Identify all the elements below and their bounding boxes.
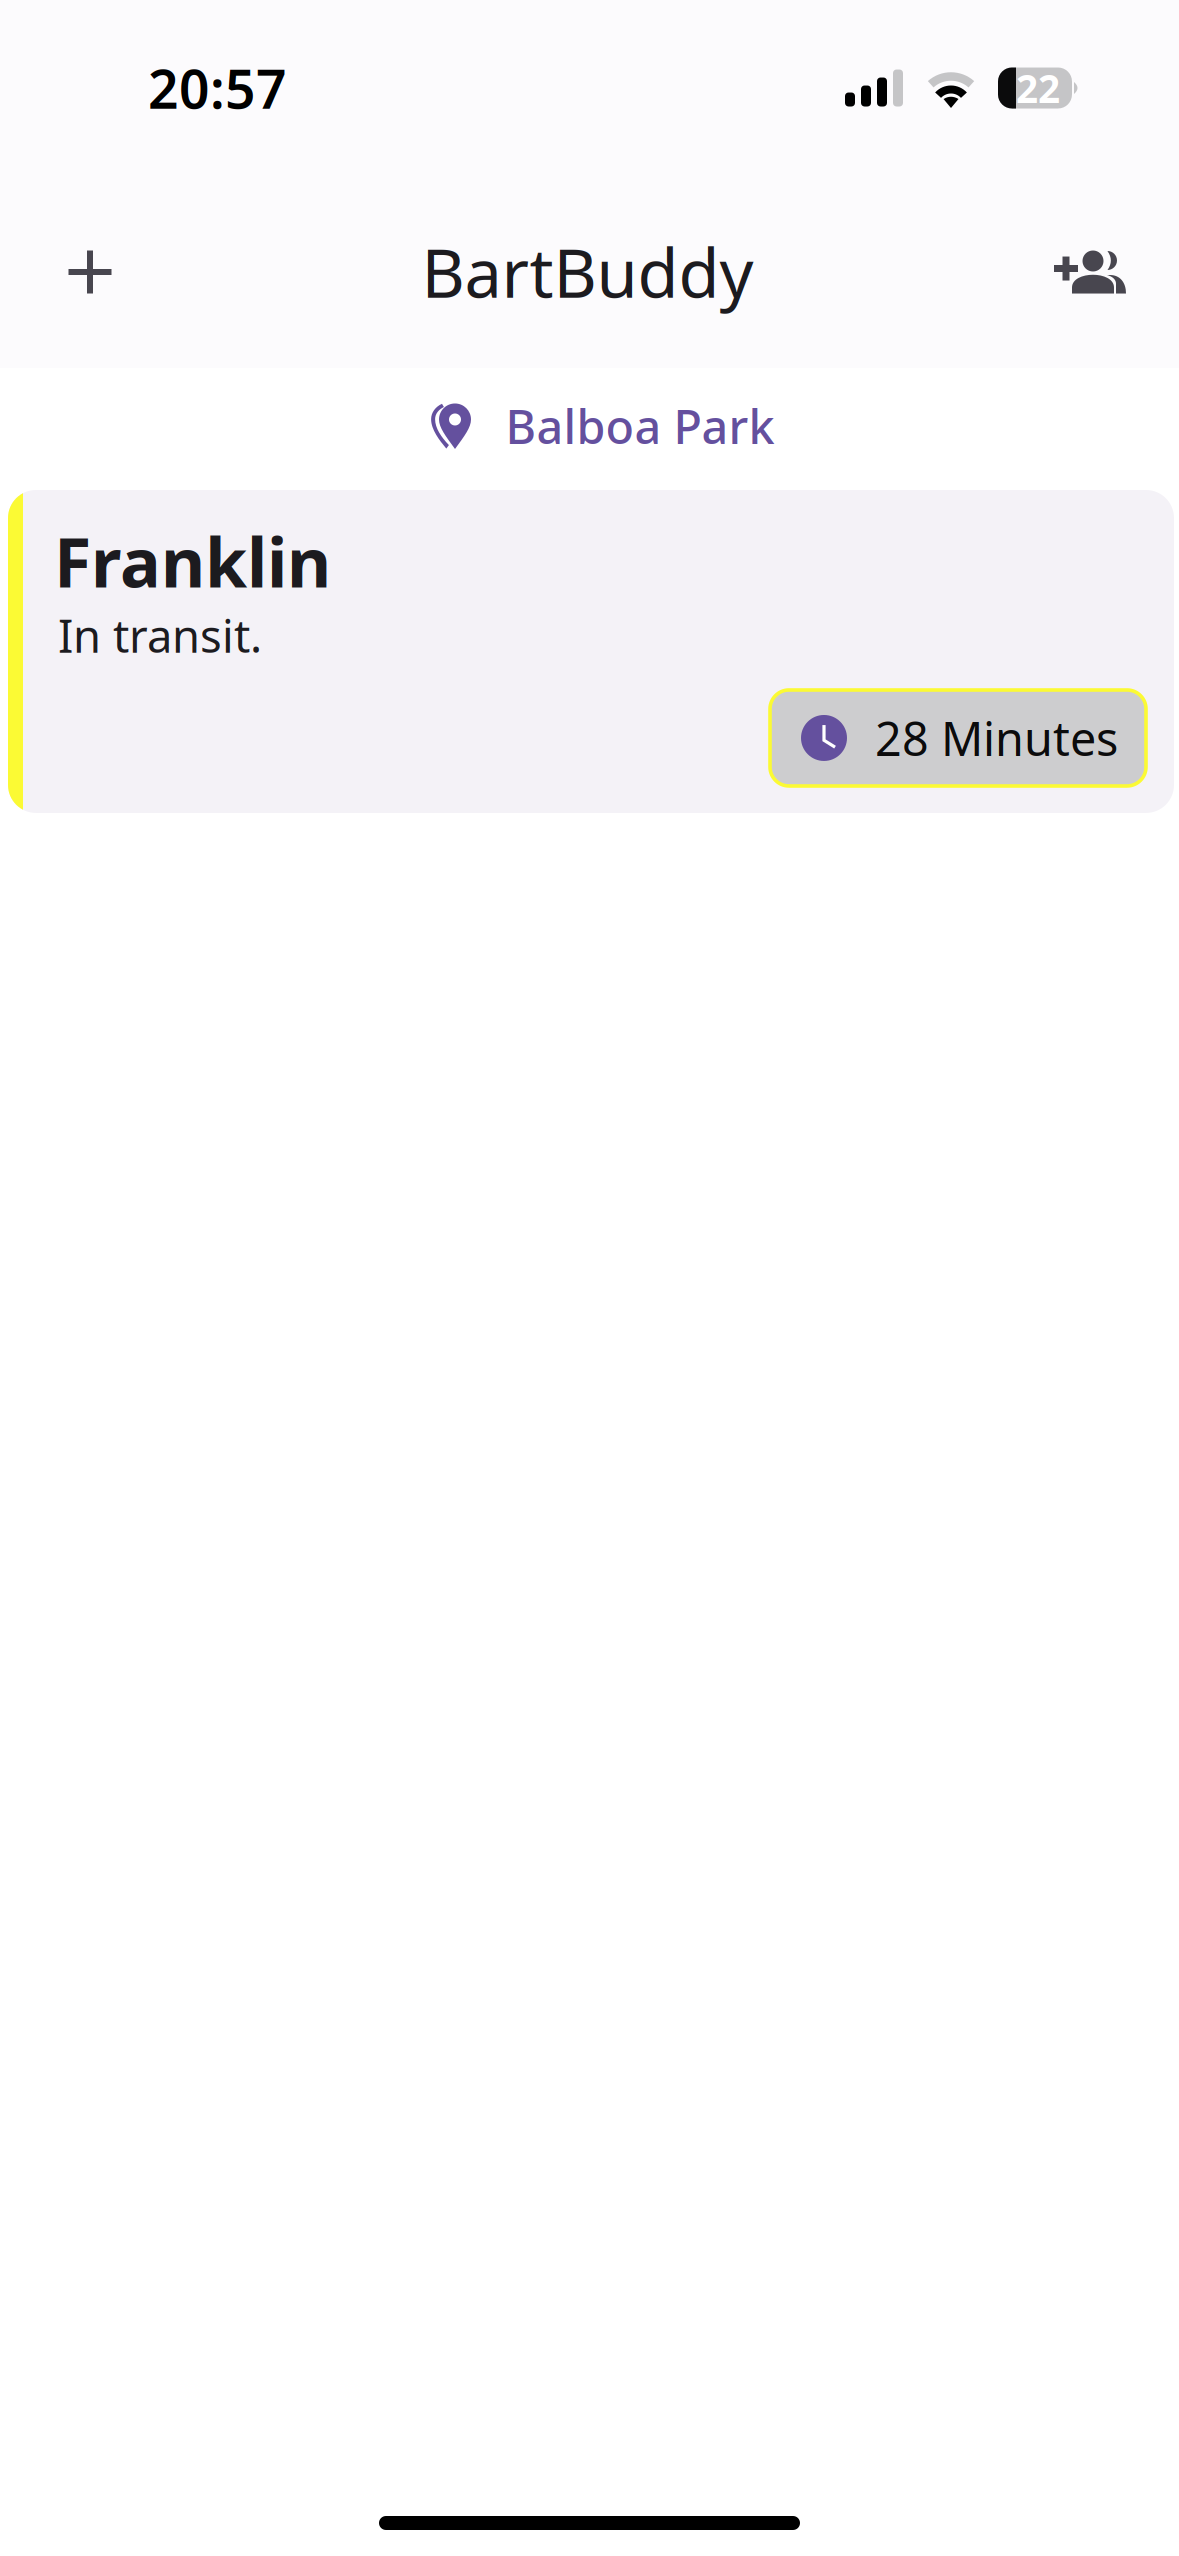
button[interactable]: Balboa Park xyxy=(430,395,774,457)
button[interactable]: Add people xyxy=(1038,217,1142,327)
staticText: BartBuddy xyxy=(421,228,753,316)
staticText: 28 Minutes xyxy=(875,707,1118,769)
staticText: Balboa Park xyxy=(505,395,774,457)
staticText: In transit. xyxy=(58,605,262,665)
button[interactable]: Add station xyxy=(38,217,142,327)
staticText: 20:57 xyxy=(148,53,287,123)
button[interactable]: Franklin xyxy=(8,490,1174,813)
staticText: 22 xyxy=(1016,62,1060,114)
staticText: Franklin xyxy=(54,516,331,606)
